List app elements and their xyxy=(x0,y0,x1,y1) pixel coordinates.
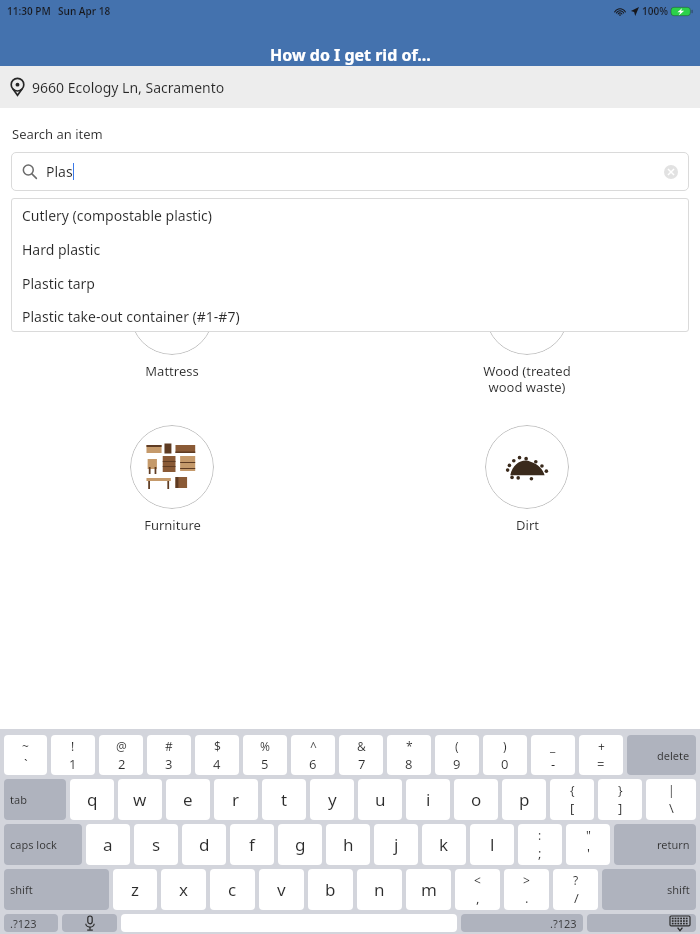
button[interactable]: z xyxy=(113,869,157,910)
button[interactable]: 9660 Ecology Ln, Sacramento xyxy=(0,66,700,108)
staticText: .?123 xyxy=(10,916,37,931)
button[interactable]: tab xyxy=(4,779,66,820)
staticText: # xyxy=(165,738,173,754)
button[interactable]: " xyxy=(566,824,610,865)
button[interactable]: i xyxy=(406,779,450,820)
staticText: ' xyxy=(587,844,590,862)
button[interactable]: d xyxy=(182,824,226,865)
button[interactable]: .?123 xyxy=(461,914,583,932)
staticText: n xyxy=(374,878,385,901)
staticText: return xyxy=(657,837,690,852)
button[interactable]: q xyxy=(70,779,114,820)
staticText: < xyxy=(474,872,481,888)
staticText: h xyxy=(343,833,354,856)
button[interactable]: # xyxy=(147,735,191,775)
button[interactable]: % xyxy=(243,735,287,775)
button[interactable]: caps lock xyxy=(4,824,82,865)
button[interactable]: u xyxy=(358,779,402,820)
button[interactable]: Clear search xyxy=(664,165,678,179)
button[interactable]: > xyxy=(504,869,549,910)
button[interactable]: Hide keyboard xyxy=(587,914,696,932)
staticText: Hard plastic xyxy=(22,240,101,259)
staticText: Sun Apr 18 xyxy=(58,4,111,18)
button[interactable]: { xyxy=(550,779,594,820)
button[interactable]: Plas xyxy=(11,152,689,191)
staticText: o xyxy=(471,788,482,811)
staticText: a xyxy=(103,833,113,856)
button[interactable]: m xyxy=(406,869,451,910)
button[interactable]: j xyxy=(374,824,418,865)
button[interactable]: Mattress xyxy=(102,271,242,380)
button[interactable]: Furniture xyxy=(102,425,242,534)
button[interactable]: t xyxy=(262,779,306,820)
button[interactable]: f xyxy=(230,824,274,865)
button[interactable]: Hard plastic xyxy=(11,232,689,266)
button[interactable]: < xyxy=(455,869,500,910)
button[interactable]: x xyxy=(161,869,206,910)
staticText: / xyxy=(574,889,579,907)
staticText: Dirt xyxy=(516,516,539,534)
button[interactable]: Plastic take-out container (#1-#7) xyxy=(11,300,689,332)
button[interactable]: | xyxy=(646,779,696,820)
staticText: i xyxy=(426,788,431,811)
staticText: . xyxy=(525,889,529,907)
button[interactable]: ! xyxy=(51,735,95,775)
staticText: ? xyxy=(573,872,579,888)
button[interactable]: l xyxy=(470,824,514,865)
button[interactable]: * xyxy=(387,735,431,775)
staticText: ^ xyxy=(310,738,317,754)
button[interactable]: ) xyxy=(483,735,527,775)
button[interactable]: p xyxy=(502,779,546,820)
button[interactable]: w xyxy=(118,779,162,820)
button[interactable]: Wood (treated wood waste) xyxy=(457,271,597,395)
staticText: Mattress xyxy=(145,362,199,380)
staticText: ` xyxy=(24,755,28,773)
button[interactable]: return xyxy=(614,824,696,865)
button[interactable]: delete xyxy=(627,735,696,775)
staticText: g xyxy=(295,833,306,856)
staticText: " xyxy=(586,827,591,843)
button[interactable]: _ xyxy=(531,735,575,775)
button[interactable]: r xyxy=(214,779,258,820)
staticText: p xyxy=(519,788,530,811)
button[interactable]: @ xyxy=(99,735,143,775)
staticText: & xyxy=(357,738,366,754)
button[interactable]: v xyxy=(259,869,304,910)
button[interactable]: y xyxy=(310,779,354,820)
button[interactable]: $ xyxy=(195,735,239,775)
button[interactable]: c xyxy=(210,869,255,910)
button[interactable]: & xyxy=(339,735,383,775)
button[interactable]: a xyxy=(86,824,130,865)
staticText: Search an item xyxy=(12,125,103,143)
button[interactable]: b xyxy=(308,869,353,910)
button[interactable]: ( xyxy=(435,735,479,775)
button[interactable]: shift xyxy=(4,869,109,910)
button[interactable]: Dictate xyxy=(62,914,117,932)
staticText: tab xyxy=(10,792,27,807)
button[interactable]: e xyxy=(166,779,210,820)
button[interactable]: shift xyxy=(602,869,696,910)
button[interactable]: : xyxy=(518,824,562,865)
staticText: $ xyxy=(214,738,221,754)
staticText: 5 xyxy=(261,755,269,773)
button[interactable]: ? xyxy=(553,869,598,910)
button[interactable]: } xyxy=(598,779,642,820)
staticText: q xyxy=(87,788,98,811)
staticText: 7 xyxy=(358,755,366,773)
button[interactable]: s xyxy=(134,824,178,865)
button[interactable]: ~ xyxy=(4,735,47,775)
button[interactable]: h xyxy=(326,824,370,865)
button[interactable]: .?123 xyxy=(4,914,58,932)
button[interactable]: k xyxy=(422,824,466,865)
button[interactable]: Cutlery (compostable plastic) xyxy=(11,198,689,232)
staticText: .?123 xyxy=(550,916,577,931)
button[interactable]: + xyxy=(579,735,623,775)
button[interactable]: ^ xyxy=(291,735,335,775)
button[interactable]: g xyxy=(278,824,322,865)
button[interactable]: Plastic tarp xyxy=(11,266,689,300)
staticText: d xyxy=(199,833,210,856)
button[interactable]: Dirt xyxy=(457,425,597,534)
button[interactable]: n xyxy=(357,869,402,910)
button[interactable]: o xyxy=(454,779,498,820)
